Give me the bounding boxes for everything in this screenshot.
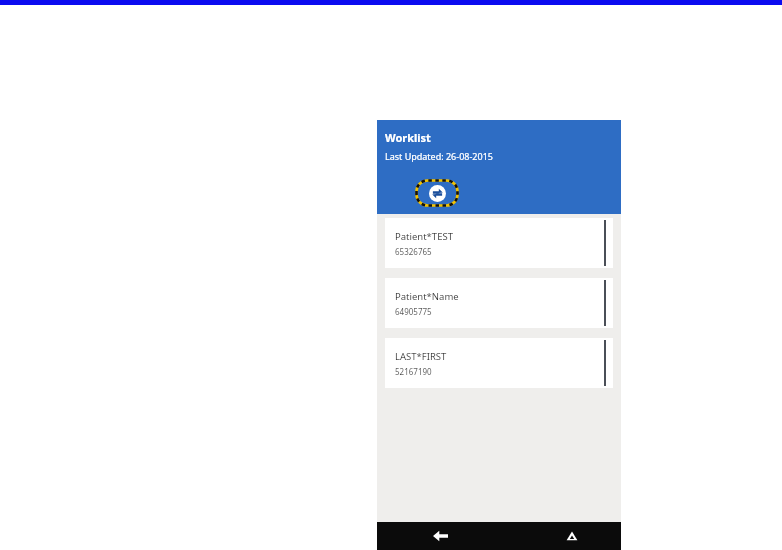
button[interactable]: LAST*FIRST [385,338,613,388]
staticText: LAST*FIRST [395,350,447,363]
staticText: Patient*TEST [395,230,453,243]
staticText: 65326765 [395,246,432,257]
button[interactable]: Home [555,522,589,550]
button[interactable]: Patient*TEST [385,218,613,268]
staticText: Patient*Name [395,290,459,303]
button[interactable]: Patient*Name [385,278,613,328]
button[interactable]: Back [423,522,457,550]
staticText: Last Updated: 26-08-2015 [385,150,493,162]
button[interactable]: Refresh worklist [415,179,459,207]
staticText: Worklist [385,130,431,145]
staticText: 52167190 [395,366,432,377]
staticText: 64905775 [395,306,432,317]
